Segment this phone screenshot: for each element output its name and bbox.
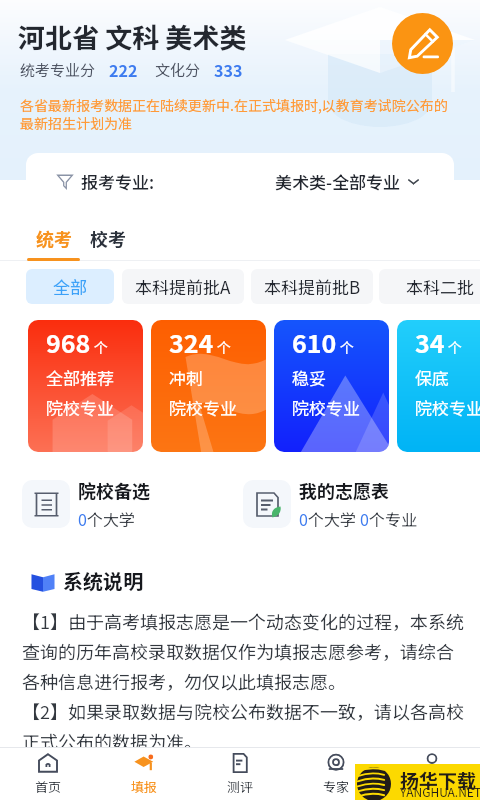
button[interactable]: 填报 — [96, 748, 192, 800]
staticText: 个 — [448, 337, 462, 357]
staticText: 个 — [340, 337, 354, 357]
button[interactable]: 专家 — [288, 748, 384, 800]
button[interactable]: 统考 — [27, 225, 80, 261]
staticText: 保底 — [415, 365, 449, 390]
staticText: 个大学 — [87, 507, 136, 530]
staticText: 院校专业 — [46, 395, 114, 420]
staticText: 0 — [78, 507, 87, 530]
staticText: 统考专业分 — [20, 59, 96, 81]
staticText: 院校专业 — [169, 395, 237, 420]
button[interactable]: 首页 — [0, 748, 96, 800]
staticText: 首页 — [35, 777, 62, 796]
staticText: 0 — [299, 507, 308, 530]
staticText: 统考 — [36, 225, 72, 251]
button[interactable]: 报考专业: — [26, 153, 454, 209]
staticText: 610 — [292, 324, 337, 360]
button[interactable]: 全部 — [26, 269, 114, 304]
button[interactable]: 本科提前批A — [122, 269, 244, 304]
staticText: 全部 — [53, 274, 87, 299]
staticText: 我的志愿表 — [299, 477, 389, 503]
button[interactable]: 本科二批 — [379, 269, 480, 304]
staticText: 本科提前批A — [135, 274, 231, 299]
staticText: 院校备选 — [78, 477, 150, 503]
staticText: 0 — [360, 507, 369, 530]
staticText: 河北省 文科 美术类 — [18, 17, 247, 56]
staticText: 各省最新报考数据正在陆续更新中.在正式填报时,以教育考试院公布的最新招生计划为准 — [20, 95, 454, 133]
staticText: 校考 — [90, 225, 126, 251]
staticText: 院校专业 — [415, 395, 480, 420]
button[interactable]: 校考 — [81, 225, 134, 261]
staticText: 本科提前批B — [264, 274, 361, 299]
staticText: 系统说明 — [63, 566, 143, 595]
staticText: 我的 — [419, 777, 446, 796]
staticText: 美术类-全部专业 — [275, 169, 401, 194]
staticText: 个大学 — [308, 507, 360, 530]
staticText: 填报 — [131, 777, 158, 796]
staticText: 968 — [46, 324, 91, 360]
button[interactable]: 本科提前批B — [251, 269, 373, 304]
button[interactable]: 编辑 — [392, 13, 453, 74]
button[interactable]: 610 — [274, 320, 389, 452]
button[interactable]: 测评 — [192, 748, 288, 800]
staticText: 测评 — [227, 777, 254, 796]
button[interactable]: 院校备选 — [22, 477, 150, 530]
staticText: 扬华下载 — [400, 766, 477, 794]
button[interactable]: 我的 — [384, 748, 480, 800]
button[interactable]: 34 — [397, 320, 480, 452]
staticText: YANGHUA.NET — [400, 783, 480, 800]
staticText: 个 — [94, 337, 108, 357]
staticText: 333 — [214, 58, 243, 81]
staticText: 【1】由于高考填报志愿是一个动态变化的过程，本系统查询的历年高校录取数据仅作为填… — [22, 608, 466, 694]
button[interactable]: 324 — [151, 320, 266, 452]
staticText: 222 — [109, 58, 138, 81]
staticText: 冲刺 — [169, 365, 203, 390]
staticText: 稳妥 — [292, 365, 326, 390]
staticText: 324 — [169, 324, 214, 360]
staticText: 全部推荐 — [46, 365, 114, 390]
staticText: 院校专业 — [292, 395, 360, 420]
staticText: 【2】如果录取数据与院校公布数据不一致，请以各高校正式公布的数据为准。 — [22, 698, 466, 754]
staticText: 34 — [415, 324, 445, 360]
button[interactable]: 968 — [28, 320, 143, 452]
staticText: 个专业 — [369, 507, 418, 530]
staticText: 专家 — [323, 777, 350, 796]
staticText: 报考专业: — [81, 169, 155, 194]
button[interactable]: 我的志愿表 — [243, 477, 418, 530]
staticText: 个 — [217, 337, 231, 357]
staticText: 本科二批 — [406, 274, 474, 299]
staticText: 文化分 — [155, 59, 201, 81]
